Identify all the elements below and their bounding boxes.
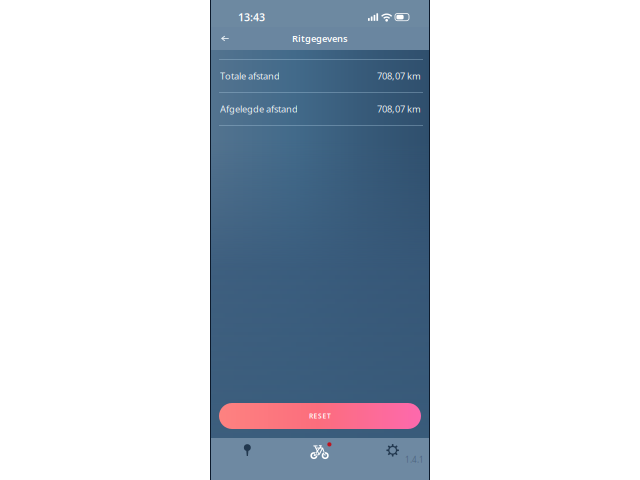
button[interactable]: Back bbox=[213, 26, 237, 50]
staticText: 1.4.1 bbox=[405, 454, 424, 465]
staticText: Ritgegevens bbox=[292, 32, 348, 45]
staticText: 708,07 km bbox=[377, 103, 421, 115]
button[interactable]: Rides bbox=[284, 432, 356, 480]
staticText: Totale afstand bbox=[220, 70, 280, 82]
staticText: 708,07 km bbox=[377, 70, 421, 82]
button[interactable]: Settings bbox=[356, 432, 429, 480]
button[interactable]: RESET bbox=[219, 403, 421, 429]
staticText: Afgelegde afstand bbox=[220, 103, 298, 115]
button[interactable]: Locations bbox=[211, 432, 284, 480]
staticText: RESET bbox=[309, 412, 331, 420]
staticText: 13:43 bbox=[238, 10, 265, 24]
